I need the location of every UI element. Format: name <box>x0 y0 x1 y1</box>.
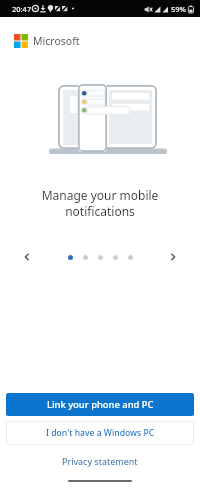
staticText: Link your phone and PC <box>47 398 154 411</box>
staticText: Privacy statement <box>62 455 138 467</box>
button[interactable]: Previous <box>17 247 37 267</box>
button[interactable]: I don't have a Windows PC <box>6 421 194 445</box>
button[interactable]: Link your phone and PC <box>6 393 194 416</box>
button[interactable]: Privacy statement <box>0 453 200 469</box>
staticText: 59% <box>171 4 186 14</box>
staticText: Manage your mobile notifications <box>0 187 200 219</box>
button[interactable]: Next <box>163 247 183 267</box>
staticText: I don't have a Windows PC <box>46 427 155 439</box>
staticText: 20:47 <box>12 4 32 14</box>
staticText: Microsoft <box>33 34 80 48</box>
